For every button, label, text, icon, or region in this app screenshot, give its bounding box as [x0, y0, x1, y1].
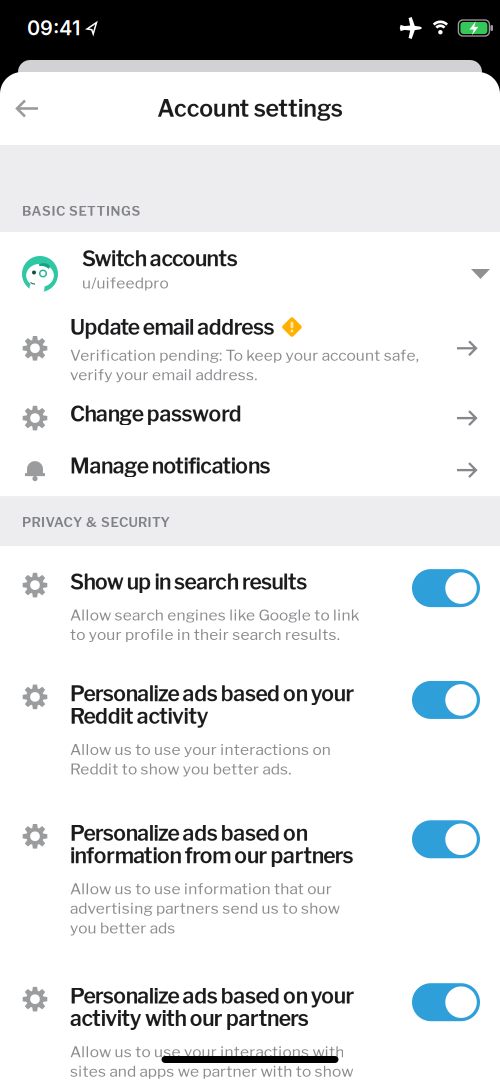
staticText: Personalize ads based on your Reddit act…	[70, 681, 354, 729]
staticText: PRIVACY & SECURITY	[22, 514, 169, 530]
staticText: Account settings	[157, 94, 343, 122]
button[interactable]: Show up in search results	[412, 569, 480, 607]
staticText: Manage notifications	[70, 453, 270, 479]
staticText: Allow search engines like Google to link…	[70, 606, 360, 644]
button[interactable]: Personalize ads based on your activity w…	[412, 983, 480, 1021]
staticText: Allow us to use your interactions with s…	[70, 1042, 353, 1080]
button[interactable]: Personalize ads based on your Reddit act…	[412, 681, 480, 719]
staticText: Allow us to use your interactions on Red…	[70, 740, 331, 778]
staticText: 09:41	[27, 16, 80, 40]
staticText: Personalize ads based on your activity w…	[70, 983, 354, 1031]
staticText: Personalize ads based on information fro…	[70, 820, 353, 868]
staticText: u/uifeedpro	[82, 273, 168, 292]
button[interactable]: Back	[0, 88, 39, 128]
staticText: BASIC SETTINGS	[22, 203, 140, 219]
staticText: Allow us to use information that our adv…	[70, 879, 340, 937]
button[interactable]: Personalize ads based on information fro…	[412, 820, 480, 858]
button[interactable]: Manage notifications	[0, 453, 500, 496]
staticText: Switch accounts	[82, 246, 238, 271]
button[interactable]: Change password	[0, 401, 500, 453]
staticText: Change password	[70, 401, 242, 427]
staticText: Update email address	[70, 314, 274, 340]
button[interactable]: Update email address	[0, 314, 500, 401]
staticText: Verification pending: To keep your accou…	[70, 346, 419, 384]
button[interactable]: Switch accounts	[0, 232, 500, 314]
staticText: Show up in search results	[70, 569, 307, 595]
